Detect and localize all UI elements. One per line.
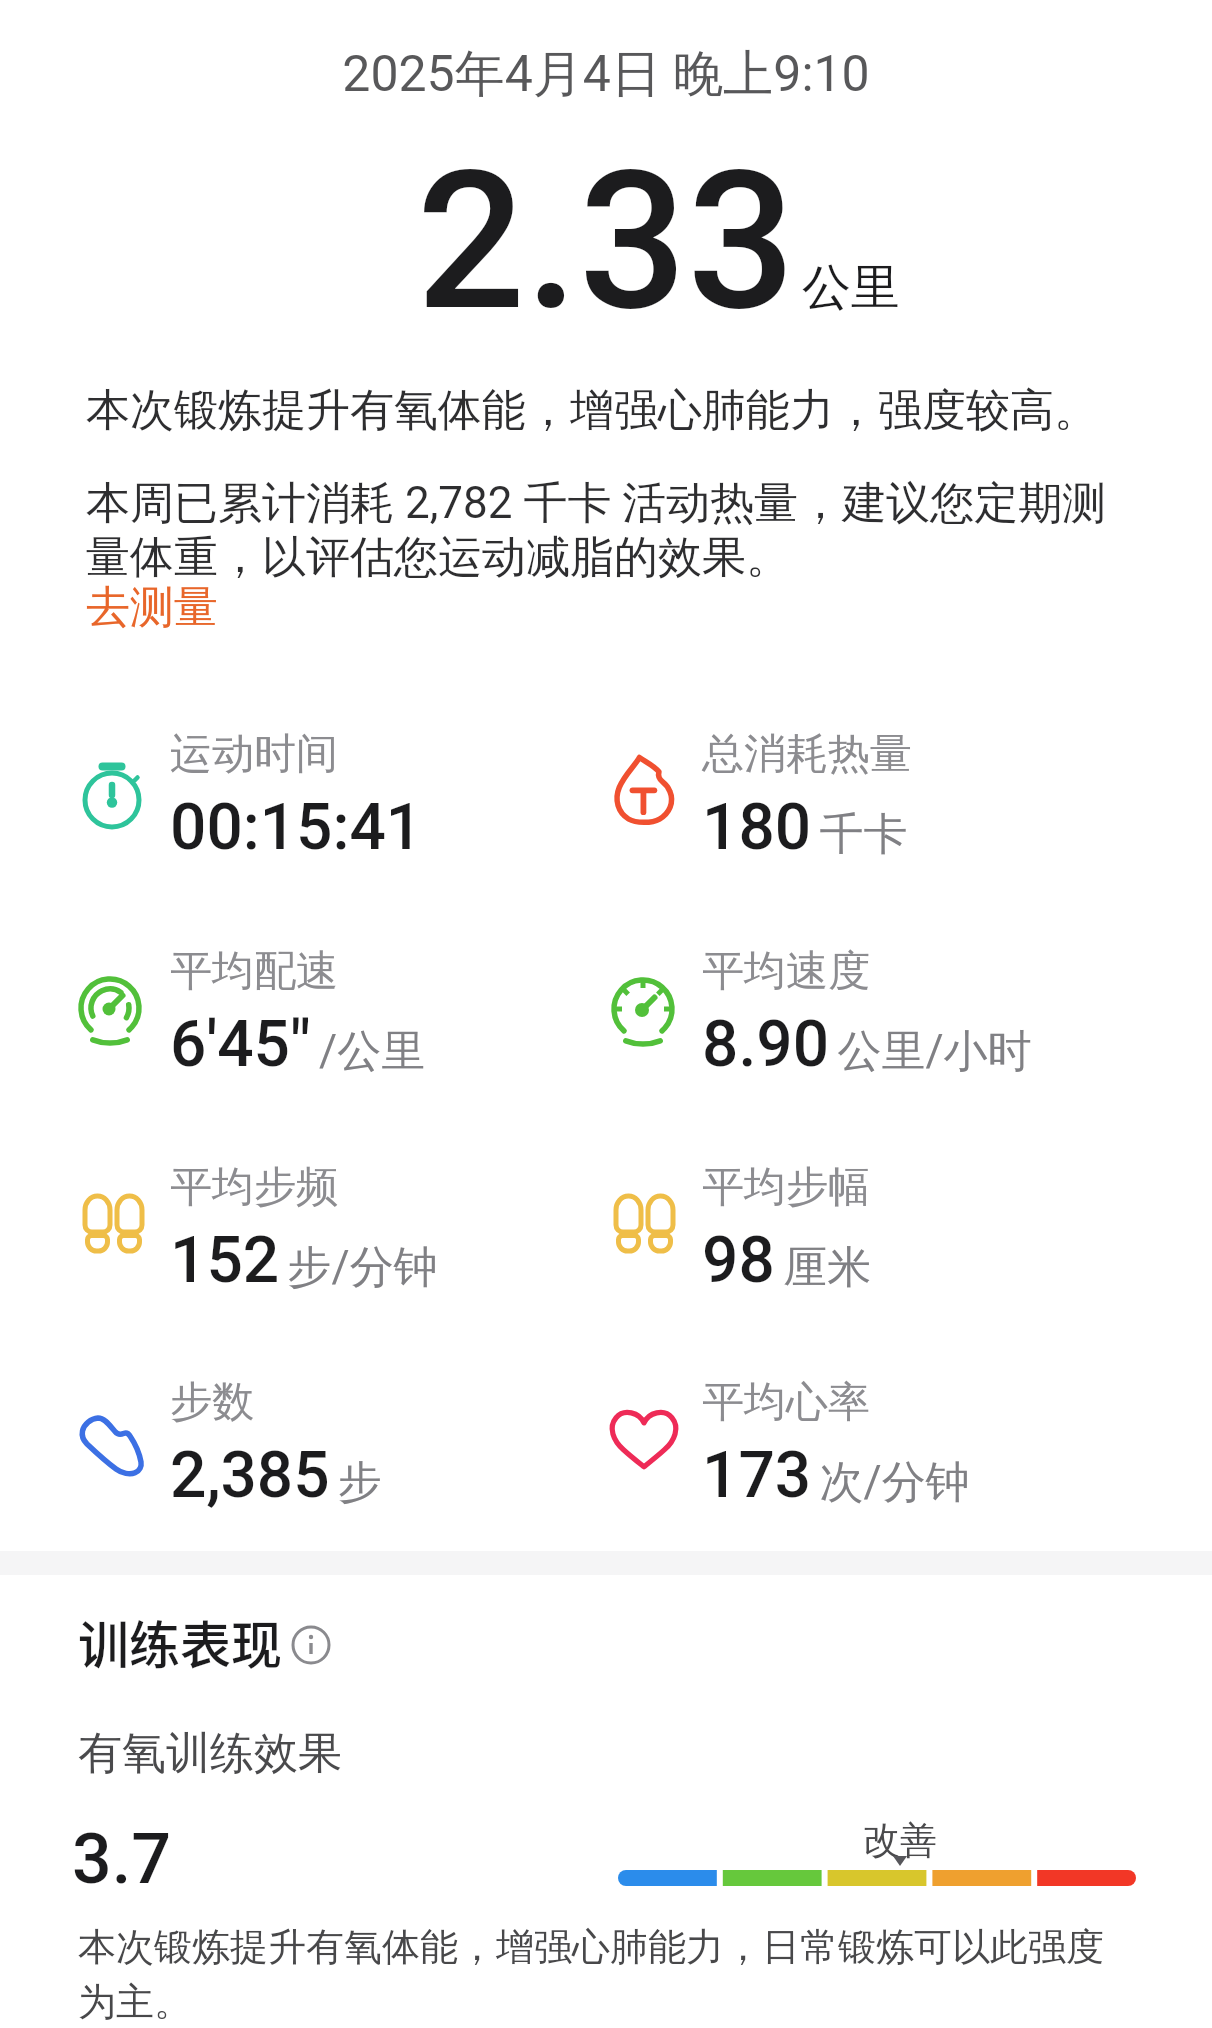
staticText: 平均心率 <box>702 1376 870 1429</box>
staticText: 本周已累计消耗 2,782 千卡 活动热量，建议您定期测 量体重，以评估您运动减… <box>86 476 1107 585</box>
staticText: 平均配速 <box>170 945 338 998</box>
staticText: 152 步/分钟 <box>170 1223 438 1298</box>
staticText: 8.90 公里/小时 <box>702 1007 1032 1082</box>
staticText: 改善 <box>863 1817 937 1864</box>
staticText: 173 次/分钟 <box>702 1438 970 1513</box>
staticText: 去测量 <box>86 580 218 635</box>
staticText: 公里 <box>802 257 900 319</box>
staticText: 2025年4月4日 晚上9:10 <box>0 43 1212 106</box>
button[interactable] <box>289 1623 333 1667</box>
staticText: 本次锻炼提升有氧体能，增强心肺能力，强度较高。 <box>86 383 1098 438</box>
staticText: 本次锻炼提升有氧体能，增强心肺能力，日常锻炼可以此强度 为主。 <box>78 1923 1104 2026</box>
button[interactable]: 去测量 <box>80 578 212 633</box>
staticText: 00:15:41 <box>170 790 423 865</box>
staticText: 2,385 步 <box>170 1438 383 1513</box>
staticText: 训练表现 <box>78 1605 283 1679</box>
staticText: 平均步频 <box>170 1161 338 1214</box>
staticText: 6'45" /公里 <box>170 1007 426 1082</box>
staticText: 平均步幅 <box>702 1161 870 1214</box>
staticText: 步数 <box>170 1376 254 1429</box>
staticText: 2.33 <box>0 130 1212 354</box>
staticText: 运动时间 <box>170 728 338 781</box>
staticText: 3.7 <box>72 1818 172 1900</box>
staticText: 有氧训练效果 <box>78 1726 342 1781</box>
staticText: 180 千卡 <box>702 790 908 865</box>
staticText: 平均速度 <box>702 945 870 998</box>
staticText: 98 厘米 <box>702 1223 872 1298</box>
staticText: 总消耗热量 <box>702 728 912 781</box>
